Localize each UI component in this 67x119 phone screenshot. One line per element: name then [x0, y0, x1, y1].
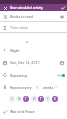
staticText: S	[11, 97, 13, 101]
staticText: Time value	[10, 25, 29, 30]
button[interactable]: Repeating toggle	[57, 73, 65, 78]
staticText: S	[54, 97, 56, 101]
button[interactable]: Sun, Dec 14, 2017	[0, 56, 67, 69]
button[interactable]: W	[31, 96, 37, 102]
staticText: weeks	[43, 85, 54, 90]
button[interactable]: Pick date	[58, 59, 65, 66]
button[interactable]: Close	[2, 5, 8, 11]
button[interactable]: F	[45, 96, 51, 102]
staticText: Sun, Dec 14, 2017	[10, 60, 40, 65]
button[interactable]: T	[38, 96, 44, 102]
button[interactable]: Choose book	[58, 13, 65, 20]
button[interactable]: Books to read	[0, 11, 67, 22]
staticText: Repeat every	[10, 85, 32, 90]
button[interactable]: S	[9, 96, 15, 102]
staticText: New scheduled activity	[10, 6, 43, 10]
button[interactable]: S	[52, 96, 58, 102]
staticText: T	[40, 97, 42, 101]
button[interactable]: Time value	[0, 22, 67, 33]
staticText: Books to read	[10, 14, 34, 19]
staticText: Repeating	[10, 73, 27, 78]
staticText: 1	[36, 85, 39, 90]
staticText: W	[33, 97, 36, 101]
button[interactable]: Repeating	[0, 69, 67, 81]
button[interactable]: T	[23, 96, 29, 102]
button[interactable]: M	[16, 96, 22, 102]
staticText: T	[25, 97, 27, 101]
staticText: Night	[10, 48, 20, 53]
staticText: F	[47, 97, 49, 101]
button[interactable]: Save	[59, 4, 66, 11]
staticText: War and Peace	[10, 109, 35, 114]
button[interactable]: Repeat every	[0, 81, 67, 93]
button[interactable]: Night	[0, 44, 67, 56]
button[interactable]: War and Peace	[0, 105, 67, 118]
staticText: M	[18, 97, 21, 101]
